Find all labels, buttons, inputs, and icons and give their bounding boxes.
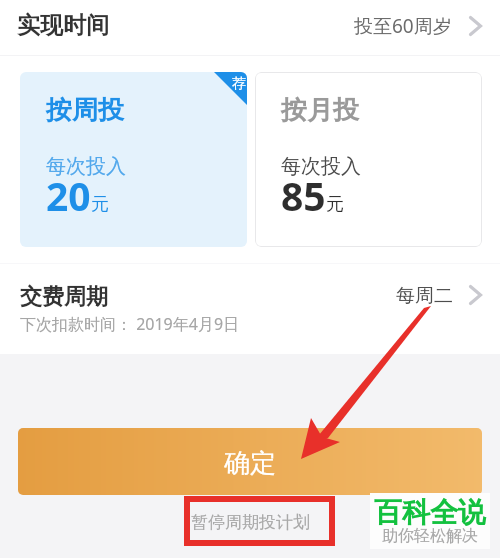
staticText: 每周二: [396, 284, 453, 308]
staticText: 交费周期: [20, 283, 108, 311]
button[interactable]: 按月投: [255, 72, 482, 247]
staticText: 元: [326, 193, 344, 216]
button[interactable]: 暂停周期投计划: [191, 512, 310, 533]
staticText: 20: [46, 169, 91, 222]
button[interactable]: 实现时间: [0, 0, 500, 55]
staticText: 按月投: [281, 94, 359, 127]
staticText: 实现时间: [17, 11, 109, 40]
button[interactable]: 交费周期: [0, 264, 500, 354]
staticText: 投至60周岁: [354, 13, 452, 39]
staticText: 每次投入: [281, 154, 361, 179]
staticText: 百科全说: [374, 495, 486, 530]
other: Open: [469, 285, 482, 305]
staticText: 85: [281, 169, 326, 222]
staticText: 助你轻松解决: [382, 526, 478, 545]
staticText: 下次扣款时间： 2019年4月9日: [20, 313, 240, 335]
staticText: 暂停周期投计划: [191, 512, 310, 533]
staticText: 按周投: [46, 94, 124, 127]
staticText: 确定: [224, 447, 276, 480]
staticText: 每次投入: [46, 154, 126, 179]
staticText: 元: [91, 193, 109, 216]
other: Open: [469, 16, 482, 36]
staticText: 荐: [232, 75, 246, 93]
button[interactable]: 按周投: [20, 72, 247, 247]
button[interactable]: 确定: [18, 428, 482, 495]
